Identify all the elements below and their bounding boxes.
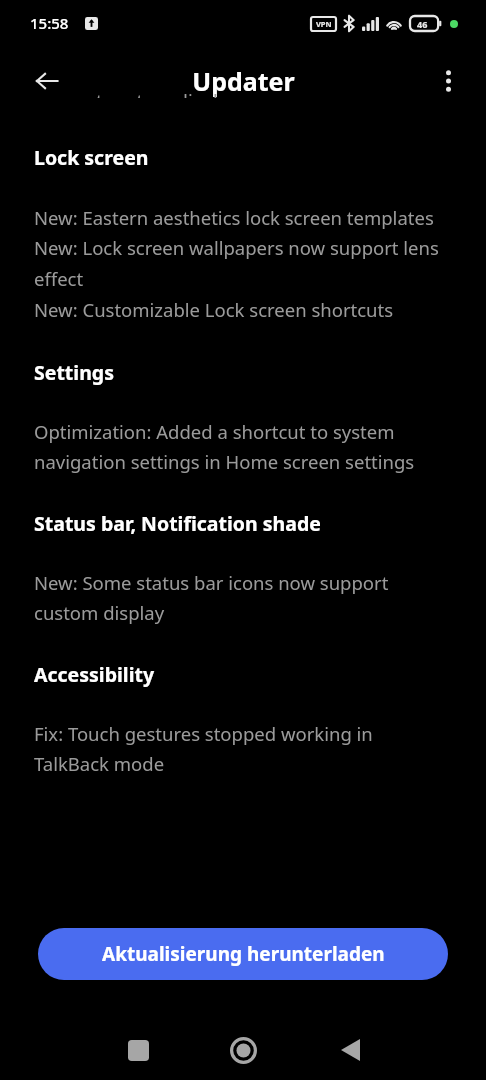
button[interactable]: Back — [23, 57, 71, 105]
button[interactable]: Aktualisierung herunterladen — [38, 928, 448, 980]
staticText: support custom display — [34, 88, 238, 98]
button[interactable]: More options — [424, 57, 472, 105]
staticText: New: Some status bar icons now support c… — [34, 570, 452, 626]
staticText: VPN — [316, 19, 332, 29]
staticText: New: Eastern aesthetics lock screen temp… — [34, 205, 452, 323]
staticText: Optimization: Added a shortcut to system… — [34, 419, 452, 475]
button[interactable]: Back — [318, 1020, 382, 1080]
staticText: Settings — [34, 359, 114, 386]
staticText: Lock screen — [34, 144, 149, 171]
staticText: 15:58 — [30, 13, 69, 33]
staticText: 46 — [417, 18, 428, 30]
staticText: Fix: Touch gestures stopped working in T… — [34, 721, 452, 777]
staticText: Updater — [192, 64, 295, 98]
staticText: Status bar, Notification shade — [34, 510, 321, 537]
staticText: Accessibility — [34, 661, 155, 688]
button[interactable]: Home — [211, 1020, 275, 1080]
staticText: Aktualisierung herunterladen — [102, 941, 385, 967]
button[interactable]: Recent apps — [106, 1020, 170, 1080]
